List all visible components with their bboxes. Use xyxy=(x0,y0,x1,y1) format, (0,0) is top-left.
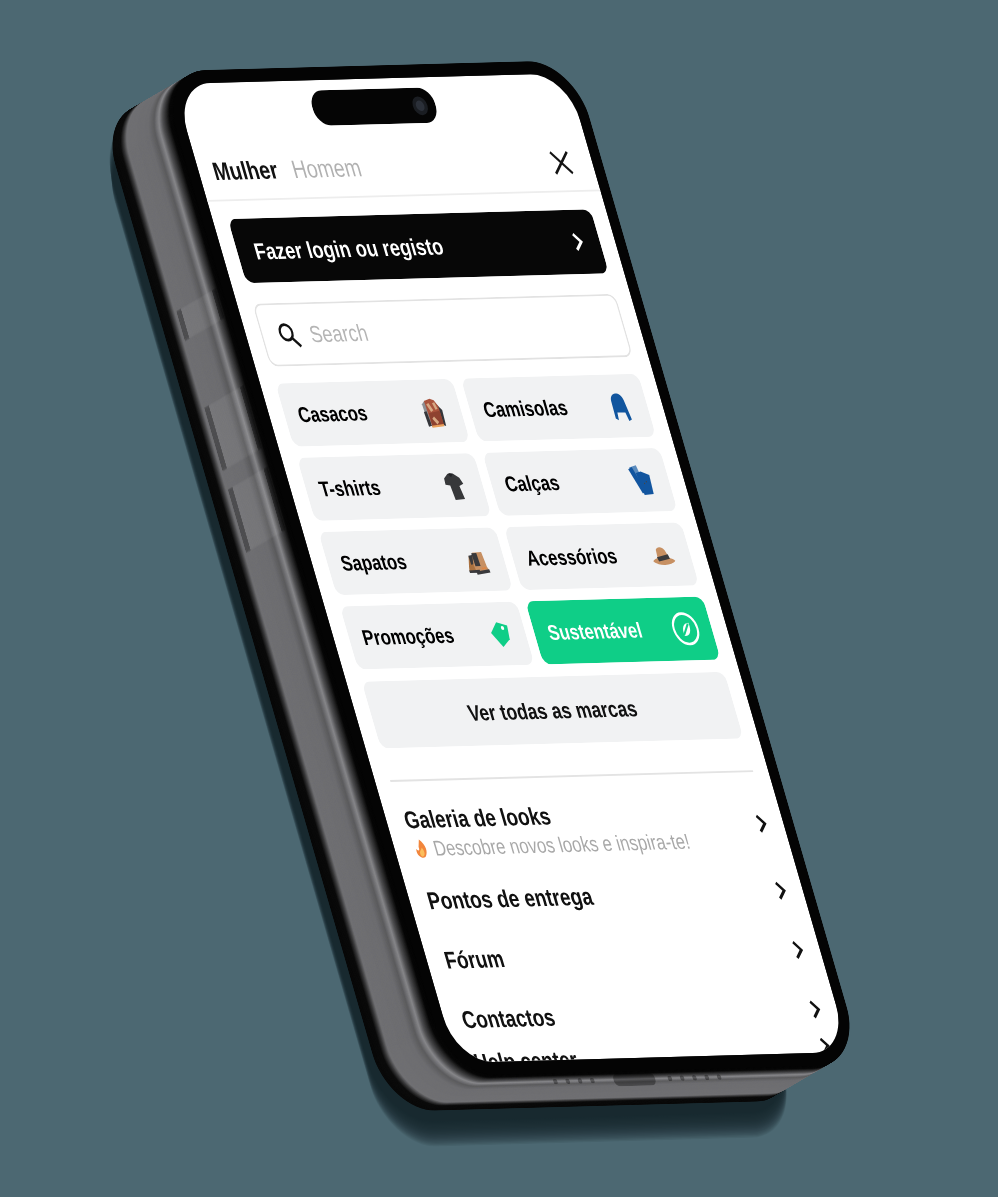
button[interactable]: Ver todas as marcas xyxy=(361,672,744,748)
button[interactable]: Pontos de entrega xyxy=(401,860,811,930)
button[interactable]: Mulher xyxy=(209,156,282,186)
staticText: Calças xyxy=(502,470,563,496)
button[interactable]: Promoções xyxy=(340,602,535,670)
staticText: Pontos de entrega xyxy=(424,882,596,914)
button[interactable]: Close xyxy=(542,144,580,180)
staticText: Casacos xyxy=(295,401,370,427)
button[interactable]: Homem xyxy=(288,154,365,183)
button[interactable]: Fórum xyxy=(418,919,828,989)
button[interactable]: Fazer login ou registo xyxy=(228,209,609,283)
staticText: T-shirts xyxy=(316,475,384,501)
button[interactable]: Casacos xyxy=(275,379,470,447)
button[interactable]: Sapatos xyxy=(318,527,513,595)
button[interactable]: T-shirts xyxy=(297,453,492,521)
button[interactable]: Acessórios xyxy=(504,522,699,590)
button[interactable]: Contactos xyxy=(435,979,846,1049)
staticText: Descobre novos looks e inspira-te! xyxy=(430,829,693,860)
staticText: Camisolas xyxy=(480,395,571,422)
button[interactable]: Calças xyxy=(482,448,678,516)
button[interactable]: Search xyxy=(252,294,633,367)
staticText: Contactos xyxy=(458,1003,559,1033)
staticText: Mulher xyxy=(209,156,282,186)
button[interactable]: Galeria de looks xyxy=(379,785,794,871)
staticText: Ver todas as marcas xyxy=(465,696,641,725)
staticText: Homem xyxy=(288,154,365,183)
staticText: Search xyxy=(306,319,372,347)
button[interactable]: Camisolas xyxy=(461,374,656,442)
staticText: Promoções xyxy=(359,623,457,650)
staticText: Help center xyxy=(470,1046,577,1062)
staticText: Fazer login ou registo xyxy=(251,233,447,264)
staticText: Sapatos xyxy=(338,549,410,575)
staticText: Sustentável xyxy=(545,618,646,645)
staticText: Fórum xyxy=(441,945,507,973)
button[interactable]: Sustentável xyxy=(525,596,721,664)
staticText: Acessórios xyxy=(523,544,621,570)
button[interactable]: Help center xyxy=(452,1038,850,1063)
staticText: Galeria de looks xyxy=(400,802,554,833)
